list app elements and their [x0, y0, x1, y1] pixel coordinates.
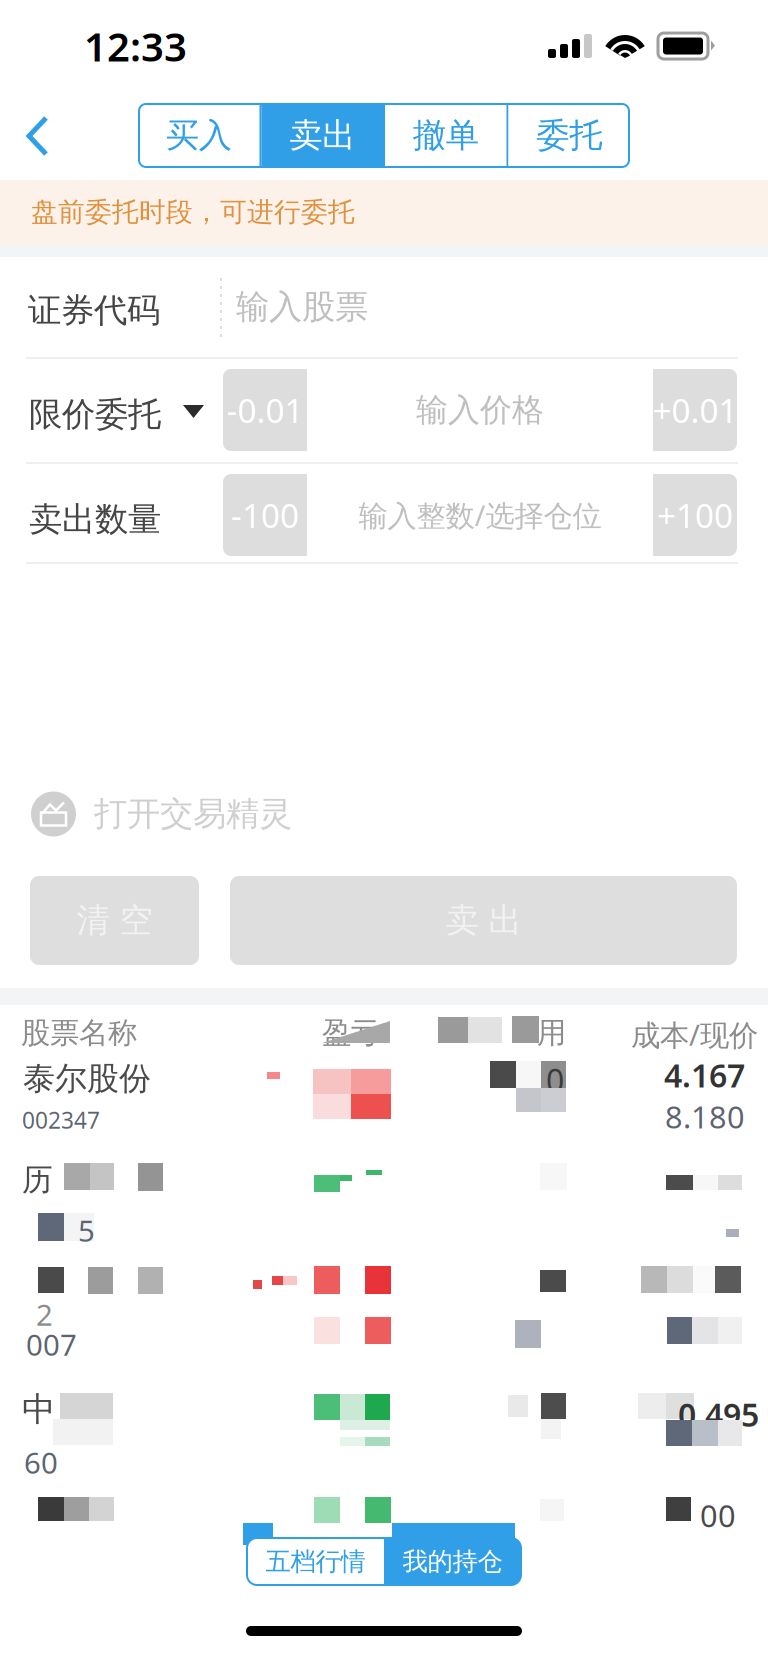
staticText: 历: [22, 1161, 53, 1199]
button[interactable]: 五档行情: [247, 1538, 384, 1585]
staticText: 007: [26, 1325, 77, 1364]
staticText: 4.167: [664, 1054, 745, 1096]
staticText: 输入价格: [416, 390, 544, 430]
staticText: 我的持仓: [402, 1546, 502, 1577]
staticText: 8.180: [665, 1096, 745, 1137]
staticText: 0.495: [678, 1393, 759, 1435]
button[interactable]: 我的持仓: [384, 1538, 521, 1585]
staticText: 2: [36, 1295, 53, 1334]
staticText: 输入整数/选择仓位: [358, 495, 601, 534]
staticText: +100: [657, 493, 733, 537]
button[interactable]: 撤单: [385, 104, 506, 167]
button[interactable]: 输入整数/选择仓位: [307, 474, 653, 556]
button[interactable]: 输入股票: [220, 257, 740, 357]
staticText: -100: [231, 493, 299, 537]
staticText: 股票名称: [21, 1015, 137, 1051]
button[interactable]: 清 空: [30, 876, 199, 965]
staticText: 002347: [22, 1105, 100, 1135]
staticText: 卖出数量: [29, 499, 161, 540]
staticText: 卖 出: [445, 900, 521, 941]
staticText: 12:33: [84, 19, 187, 72]
staticText: 0: [546, 1059, 564, 1101]
staticText: 委托: [536, 115, 602, 156]
staticText: 5: [78, 1211, 95, 1250]
button[interactable]: 输入价格: [307, 369, 653, 451]
staticText: 中: [22, 1389, 55, 1430]
staticText: 证券代码: [28, 290, 160, 331]
staticText: 盈亏: [322, 1015, 380, 1051]
button[interactable]: 打开交易精灵: [0, 783, 768, 845]
staticText: 限价委托: [29, 394, 161, 435]
staticText: 买入: [166, 115, 232, 156]
staticText: 盘前委托时段，可进行委托: [31, 196, 355, 228]
staticText: 五档行情: [265, 1546, 365, 1577]
button[interactable]: -0.01: [223, 369, 307, 451]
button[interactable]: 委托: [508, 104, 630, 167]
button[interactable]: Back: [0, 92, 78, 180]
button[interactable]: +100: [653, 474, 737, 556]
staticText: 泰尔股份: [23, 1059, 151, 1098]
staticText: 撤单: [413, 115, 479, 156]
staticText: 60: [24, 1443, 58, 1482]
staticText: 输入股票: [236, 286, 368, 327]
button[interactable]: -100: [223, 474, 307, 556]
button[interactable]: 买入: [138, 104, 259, 167]
button[interactable]: 卖出: [261, 104, 383, 167]
staticText: +0.01: [652, 388, 737, 432]
button[interactable]: Order type: [169, 391, 218, 432]
staticText: -0.01: [226, 388, 303, 432]
button[interactable]: +0.01: [653, 369, 737, 451]
staticText: 卖出: [289, 115, 355, 156]
staticText: 成本/现价: [631, 1015, 758, 1054]
staticText: 00: [700, 1495, 736, 1536]
staticText: 用: [537, 1015, 566, 1051]
staticText: 清 空: [76, 900, 152, 941]
staticText: 打开交易精灵: [94, 793, 292, 834]
